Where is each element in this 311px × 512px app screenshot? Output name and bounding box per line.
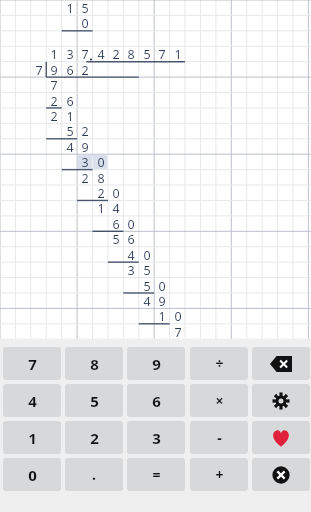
staticText: 0 — [81, 15, 89, 30]
staticText: 5 — [112, 231, 120, 246]
staticText: 3 — [152, 428, 161, 448]
staticText: 6 — [66, 93, 74, 108]
staticText: 4 — [97, 46, 105, 61]
button[interactable]: 7 — [3, 347, 61, 380]
staticText: 3 — [127, 262, 135, 277]
button[interactable]: ÷ — [190, 347, 248, 380]
staticText: 0 — [112, 185, 120, 200]
staticText: 7 — [50, 77, 58, 92]
staticText: 1 — [28, 428, 37, 448]
staticText: 2 — [81, 123, 89, 138]
staticText: 9 — [81, 139, 89, 154]
staticText: 8 — [127, 46, 135, 61]
staticText: 2 — [50, 93, 58, 108]
button[interactable]: = — [127, 458, 185, 491]
staticText: 9 — [152, 354, 161, 374]
staticText: 6 — [66, 62, 74, 77]
staticText: 3 — [174, 339, 182, 354]
staticText: 9 — [158, 293, 166, 308]
staticText: ÷ — [215, 354, 224, 373]
staticText: 5 — [81, 0, 89, 15]
staticText: 2 — [97, 185, 105, 200]
button[interactable]: . — [65, 458, 123, 491]
staticText: 7 — [35, 62, 43, 77]
staticText: 1 — [66, 108, 74, 123]
button[interactable]: 9 — [127, 347, 185, 380]
staticText: × — [215, 391, 224, 410]
button[interactable]: 6 — [127, 384, 185, 417]
staticText: 9 — [50, 62, 58, 77]
button[interactable]: 3 — [127, 421, 185, 454]
staticText: 5 — [143, 262, 151, 277]
button[interactable]: 4 — [3, 384, 61, 417]
staticText: 4 — [66, 139, 74, 154]
staticText: - — [217, 428, 222, 447]
staticText: 0 — [28, 465, 37, 485]
button[interactable]: 2 — [65, 421, 123, 454]
staticText: 2 — [90, 428, 99, 448]
staticText: 8 — [97, 170, 105, 185]
staticText: 1 — [158, 308, 166, 323]
staticText: 7 — [81, 46, 89, 61]
staticText: 1 — [66, 0, 74, 15]
staticText: + — [215, 465, 224, 484]
button[interactable]: Settings — [252, 384, 310, 417]
staticText: 3 — [66, 46, 74, 61]
button[interactable]: + — [190, 458, 248, 491]
staticText: 3 — [81, 154, 89, 169]
staticText: 5 — [143, 278, 151, 293]
staticText: 1 — [174, 46, 182, 61]
staticText: 4 — [112, 200, 120, 215]
button[interactable]: 5 — [65, 384, 123, 417]
staticText: 5 — [66, 123, 74, 138]
staticText: 7 — [28, 354, 37, 374]
button[interactable]: Favourite — [252, 421, 310, 454]
button[interactable]: Backspace — [252, 347, 310, 380]
staticText: = — [152, 465, 161, 484]
staticText: . — [92, 465, 96, 484]
button[interactable]: 0 — [3, 458, 61, 491]
button[interactable]: - — [190, 421, 248, 454]
staticText: 0 — [127, 216, 135, 231]
staticText: 4 — [143, 293, 151, 308]
staticText: 0 — [143, 247, 151, 262]
staticText: 6 — [112, 216, 120, 231]
staticText: 6 — [152, 391, 161, 411]
staticText: 0 — [174, 308, 182, 323]
staticText: 0 — [97, 154, 105, 169]
button[interactable]: × — [190, 384, 248, 417]
staticText: 5 — [143, 46, 151, 61]
button[interactable]: 1 — [3, 421, 61, 454]
staticText: 4 — [127, 247, 135, 262]
staticText: 2 — [112, 46, 120, 61]
staticText: 0 — [158, 278, 166, 293]
staticText: 1 — [50, 46, 58, 61]
staticText: 6 — [127, 231, 135, 246]
staticText: 2 — [50, 108, 58, 123]
button[interactable]: Clear — [252, 458, 310, 491]
staticText: 4 — [28, 391, 37, 411]
staticText: 2 — [81, 62, 89, 77]
staticText: 8 — [90, 354, 99, 374]
staticText: 7 — [174, 324, 182, 339]
staticText: 7 — [158, 46, 166, 61]
staticText: 1 — [97, 200, 105, 215]
staticText: 2 — [81, 170, 89, 185]
button[interactable]: 8 — [65, 347, 123, 380]
staticText: 5 — [90, 391, 99, 411]
